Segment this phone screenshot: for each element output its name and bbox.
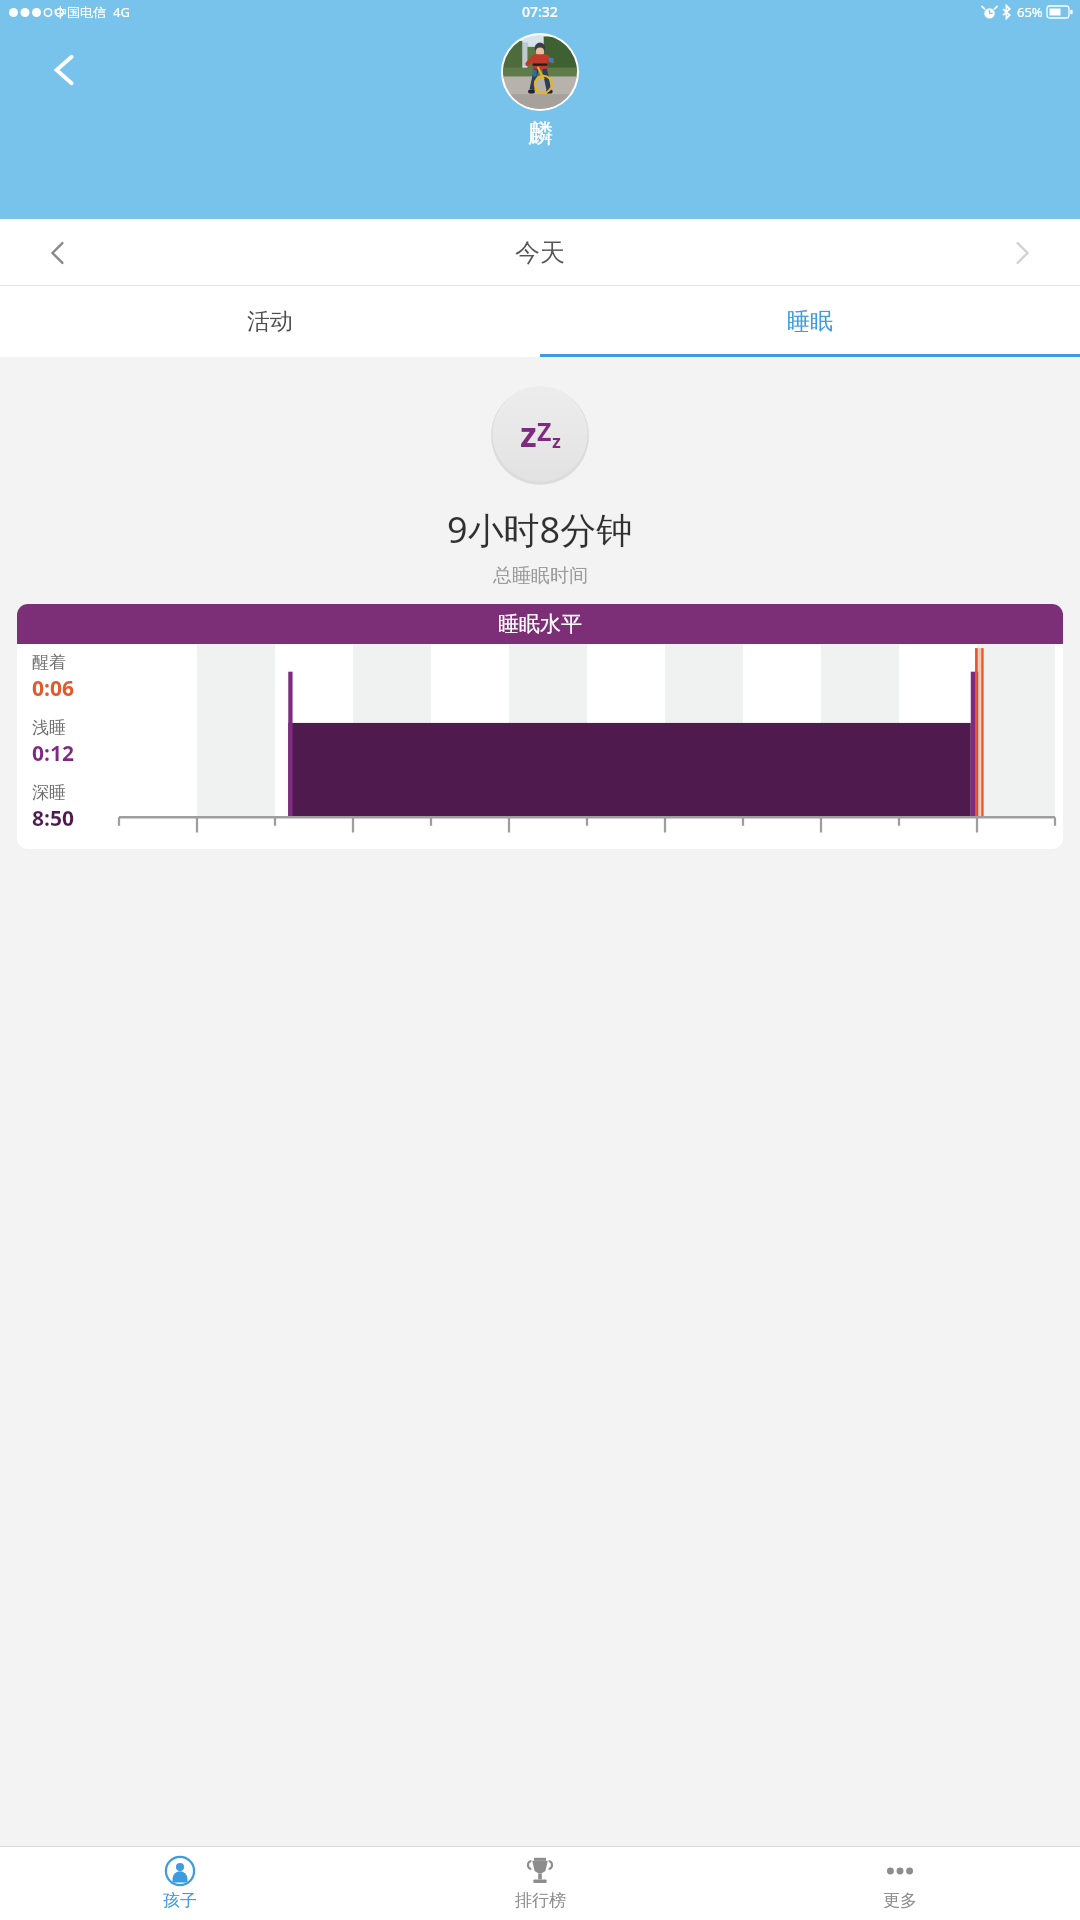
staticText: 浅睡 <box>32 717 66 738</box>
staticText: 65% <box>1017 3 1043 21</box>
staticText: 睡眠水平 <box>498 611 582 637</box>
staticText: z <box>552 429 561 454</box>
staticText: 麟 <box>528 118 553 149</box>
staticText: 更多 <box>883 1890 917 1911</box>
staticText: 排行榜 <box>515 1890 566 1911</box>
staticText: Z <box>537 414 552 448</box>
staticText: 4G <box>113 3 130 21</box>
button[interactable]: Previous day <box>30 225 86 281</box>
button[interactable]: 排行榜 <box>360 1847 720 1920</box>
button[interactable]: 今天 <box>515 237 565 268</box>
staticText: 中国电信 <box>54 4 106 20</box>
staticText: 醒着 <box>32 652 66 673</box>
staticText: 0:12 <box>32 739 74 768</box>
staticText: z <box>520 411 537 457</box>
staticText: 孩子 <box>163 1890 197 1911</box>
button[interactable]: 睡眠水平 <box>17 604 1063 849</box>
staticText: 8:50 <box>32 804 74 833</box>
button[interactable]: 更多 <box>720 1847 1080 1920</box>
staticText: 深睡 <box>32 782 66 803</box>
staticText: 0:06 <box>32 674 74 703</box>
button[interactable]: 睡眠 <box>540 286 1080 357</box>
button[interactable]: 活动 <box>0 286 540 357</box>
staticText: 总睡眠时间 <box>493 564 588 588</box>
staticText: 07:32 <box>522 2 558 21</box>
button[interactable]: Next day <box>994 225 1050 281</box>
staticText: 9小时8分钟 <box>447 505 633 554</box>
staticText: 睡眠 <box>787 307 833 336</box>
staticText: 活动 <box>247 307 293 336</box>
button[interactable]: 孩子 <box>0 1847 360 1920</box>
button[interactable]: Back <box>38 43 92 97</box>
